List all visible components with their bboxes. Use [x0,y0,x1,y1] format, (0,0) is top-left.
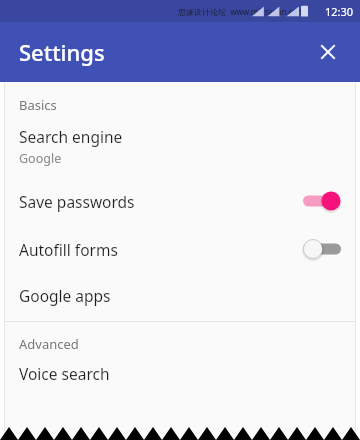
staticText: Google apps [19,285,111,306]
button[interactable]: Google apps [0,273,360,318]
staticText: Basics [19,96,57,114]
staticText: Search engine [19,126,123,147]
staticText: Voice search [19,363,110,384]
staticText: Save passwords [19,191,135,212]
staticText: Google [19,150,62,167]
button[interactable]: Autofill forms [0,225,360,273]
staticText: 12:30 [324,4,353,19]
button[interactable]: Search engine [0,114,360,177]
button[interactable]: Save passwords [0,177,360,225]
button[interactable]: Close settings [310,34,346,70]
other: Autofill forms [303,238,341,260]
button[interactable]: Voice search [0,353,360,393]
staticText: Settings [19,37,105,67]
staticText: 思缘设计论坛 www.missyuan.com [178,6,305,17]
other: Save passwords [303,190,341,212]
staticText: Autofill forms [19,239,118,260]
staticText: Advanced [19,335,79,353]
